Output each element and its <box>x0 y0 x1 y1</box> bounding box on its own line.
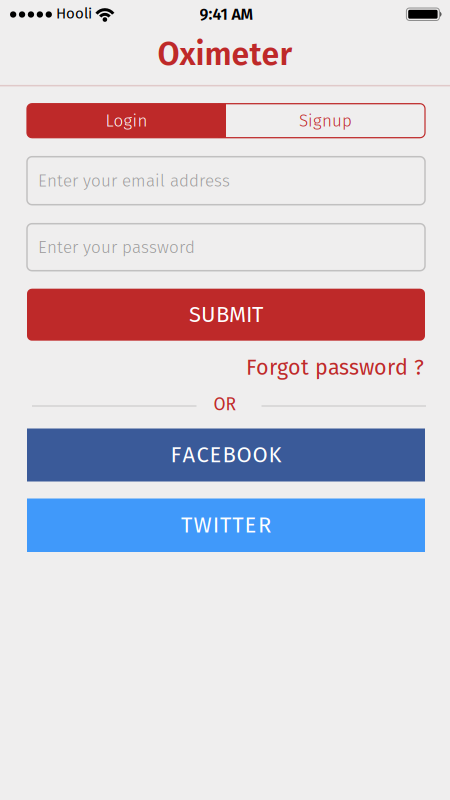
staticText: K <box>268 442 281 468</box>
staticText: O <box>236 442 251 468</box>
staticText: E <box>245 512 257 538</box>
staticText: SUBMIT <box>189 301 263 328</box>
staticText: W <box>193 512 211 538</box>
staticText: F <box>170 442 181 468</box>
staticText: T <box>232 512 243 538</box>
staticText: A <box>182 442 195 468</box>
staticText: B <box>222 442 235 468</box>
staticText: Forgot password ? <box>246 355 424 380</box>
staticText: Login <box>105 110 147 131</box>
staticText: R <box>258 512 271 538</box>
staticText: T <box>220 512 231 538</box>
button[interactable]: Forgot password ? <box>246 355 424 380</box>
staticText: Hooli <box>56 4 92 22</box>
staticText: T <box>181 512 192 538</box>
button[interactable]: SUBMIT <box>27 289 425 341</box>
staticText: Enter your email address <box>38 170 230 191</box>
staticText: Oximeter <box>157 35 292 73</box>
button[interactable]: F <box>27 428 425 481</box>
staticText: OR <box>213 394 236 415</box>
staticText: C <box>196 442 208 468</box>
button[interactable]: Signup <box>226 104 425 138</box>
button[interactable]: Login <box>27 104 226 138</box>
staticText: Enter your password <box>38 237 195 257</box>
staticText: O <box>252 442 267 468</box>
button[interactable]: T <box>27 498 425 552</box>
staticText: E <box>209 442 221 468</box>
staticText: I <box>213 512 219 538</box>
staticText: 9:41 AM <box>199 5 253 24</box>
staticText: Signup <box>299 110 352 131</box>
